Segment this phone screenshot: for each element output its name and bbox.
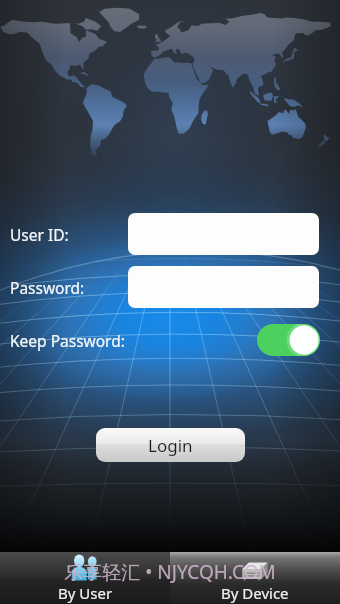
staticText: 乐享轻汇 • NJYCQH.COM (64, 559, 276, 585)
staticText: Keep Password: (10, 330, 125, 351)
button[interactable] (128, 213, 319, 255)
staticText: User ID: (10, 224, 69, 245)
button[interactable] (128, 266, 319, 308)
button[interactable]: Keep Password toggle (257, 324, 320, 356)
button[interactable]: By User (0, 552, 170, 604)
button[interactable]: By Device (170, 552, 340, 604)
staticText: Password: (10, 277, 85, 298)
staticText: By Device (221, 583, 289, 603)
staticText: Login (148, 434, 193, 457)
button[interactable]: Login (96, 428, 245, 462)
staticText: By User (58, 583, 113, 603)
